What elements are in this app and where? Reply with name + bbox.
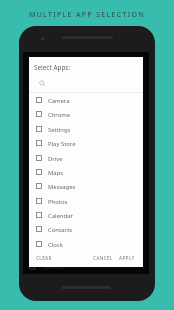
- staticText: Contacts: [48, 226, 73, 234]
- button[interactable]: Settings: [29, 122, 143, 136]
- button[interactable]: Maps: [29, 165, 143, 179]
- button[interactable]: Chrome: [29, 107, 143, 121]
- button[interactable]: Calendar: [29, 208, 143, 222]
- staticText: Calendar: [48, 212, 73, 220]
- staticText: Maps: [48, 169, 64, 177]
- staticText: Select Apps:: [34, 63, 71, 72]
- staticText: Drive: [48, 155, 63, 163]
- staticText: Clock: [48, 241, 63, 249]
- staticText: Chrome: [48, 111, 71, 119]
- button[interactable]: Messages: [29, 179, 143, 193]
- staticText: APPLY: [119, 255, 135, 262]
- staticText: Play Store: [48, 140, 76, 148]
- staticText: Camera: [48, 97, 70, 105]
- button[interactable]: Drive: [29, 151, 143, 165]
- button[interactable]: CANCEL: [93, 255, 113, 262]
- button[interactable]: Play Store: [29, 136, 143, 150]
- button[interactable]: Camera: [29, 93, 143, 107]
- staticText: Photos: [48, 198, 68, 206]
- button[interactable]: CLEAR: [36, 255, 52, 262]
- staticText: CANCEL: [93, 255, 113, 262]
- staticText: Calendar: [42, 263, 67, 271]
- button[interactable]: Contacts: [29, 222, 143, 236]
- button[interactable]: Clock: [29, 237, 143, 251]
- button[interactable]: APPLY: [119, 255, 135, 262]
- staticText: CLEAR: [36, 255, 52, 262]
- button[interactable]: Photos: [29, 194, 143, 208]
- staticText: MULTIPLE APP SELECTION: [0, 10, 174, 20]
- staticText: Settings: [48, 126, 71, 134]
- staticText: Messages: [48, 183, 76, 191]
